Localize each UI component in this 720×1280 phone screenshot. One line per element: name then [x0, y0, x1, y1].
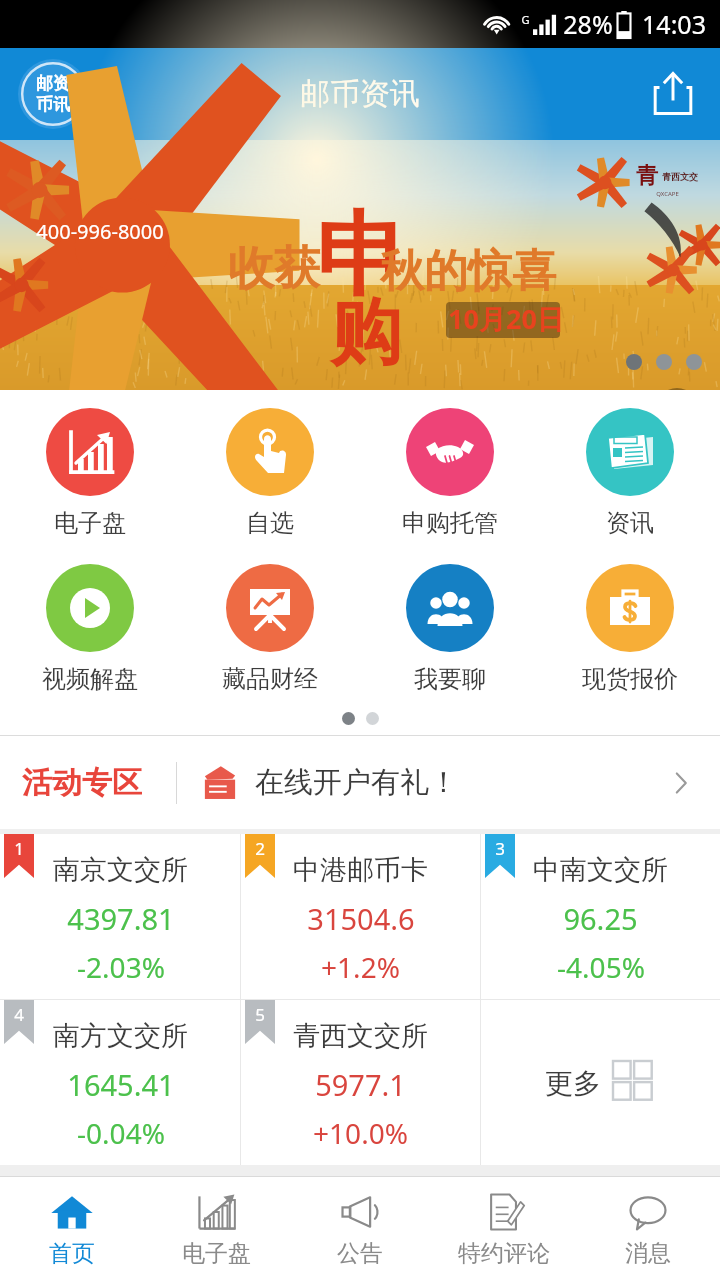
staticText: 活动专区	[22, 764, 142, 802]
button[interactable]: 更多	[481, 1000, 720, 1165]
staticText: 14:03	[642, 7, 706, 41]
staticText: 中南文交所	[533, 853, 668, 887]
staticText: 首页	[49, 1239, 95, 1268]
staticText: 2	[255, 837, 265, 860]
staticText: +10.0%	[313, 1114, 408, 1152]
button[interactable]: 电子盘	[144, 1177, 288, 1280]
staticText: -0.04%	[77, 1114, 165, 1152]
button[interactable]: 活动专区	[0, 736, 720, 829]
staticText: -4.05%	[557, 948, 645, 986]
staticText: 资	[53, 73, 70, 94]
button[interactable]: 藏品财经	[180, 558, 360, 700]
button[interactable]: 1	[0, 834, 240, 999]
staticText: 4	[14, 1003, 24, 1026]
staticText: 青西文交	[662, 171, 698, 182]
staticText: +1.2%	[321, 948, 400, 986]
staticText: 1645.41	[67, 1065, 175, 1104]
button[interactable]: 消息	[576, 1177, 720, 1280]
staticText: 3	[495, 837, 505, 860]
button[interactable]: 申购托管	[360, 402, 540, 544]
button[interactable]: 3	[481, 834, 720, 999]
staticText: 中港邮币卡	[293, 853, 428, 887]
staticText: 400-996-8000	[36, 218, 164, 245]
staticText: 公告	[337, 1239, 383, 1268]
staticText: 我要聊	[414, 664, 486, 694]
button[interactable]: 首页	[0, 1177, 144, 1280]
staticText: 青西文交所	[293, 1019, 428, 1053]
staticText: 南京文交所	[53, 853, 188, 887]
staticText: 1	[14, 837, 24, 860]
staticText: 更多	[545, 1066, 601, 1101]
staticText: 消息	[625, 1239, 671, 1268]
button[interactable]: 公告	[288, 1177, 432, 1280]
staticText: 购	[330, 288, 402, 379]
staticText: 10月20日	[448, 300, 564, 337]
button[interactable]: 特约评论	[432, 1177, 576, 1280]
staticText: 5977.1	[315, 1065, 406, 1104]
staticText: 在线开户有礼！	[255, 764, 458, 801]
staticText: -2.03%	[77, 948, 165, 986]
staticText: 电子盘	[182, 1239, 251, 1268]
button[interactable]: 自选	[180, 402, 360, 544]
button[interactable]: 资讯	[540, 402, 720, 544]
staticText: 5	[255, 1003, 265, 1026]
button[interactable]: 电子盘	[0, 402, 180, 544]
staticText: 96.25	[563, 899, 638, 938]
staticText: 收获	[228, 240, 320, 298]
button[interactable]: Promotion banner	[0, 140, 720, 390]
button[interactable]: 我要聊	[360, 558, 540, 700]
staticText: 电子盘	[54, 508, 126, 538]
staticText: 南方文交所	[53, 1019, 188, 1053]
staticText: 青	[636, 162, 658, 190]
button[interactable]: 4	[0, 1000, 240, 1165]
button[interactable]: 5	[241, 1000, 480, 1165]
staticText: QXCAPE	[656, 190, 679, 198]
staticText: 资讯	[606, 508, 654, 538]
staticText: 4397.81	[67, 899, 175, 938]
button[interactable]: 2	[241, 834, 480, 999]
staticText: 申购托管	[402, 508, 498, 538]
staticText: 秋的惊喜	[380, 244, 556, 299]
button[interactable]: Share	[646, 67, 700, 121]
staticText: 31504.6	[307, 899, 415, 938]
button[interactable]: 现货报价	[540, 558, 720, 700]
staticText: 藏品财经	[222, 664, 318, 694]
button[interactable]: Close banner	[655, 388, 699, 432]
staticText: 邮币资讯	[300, 75, 420, 113]
staticText: 邮	[36, 73, 53, 94]
button[interactable]: 视频解盘	[0, 558, 180, 700]
staticText: 特约评论	[458, 1239, 550, 1268]
staticText: 28%	[563, 7, 613, 41]
button[interactable]: App logo	[18, 59, 88, 129]
staticText: 现货报价	[582, 664, 678, 694]
staticText: 视频解盘	[42, 664, 138, 694]
staticText: G	[521, 12, 530, 27]
staticText: 币	[36, 94, 53, 115]
staticText: 讯	[53, 94, 70, 115]
staticText: 自选	[246, 508, 294, 538]
staticText: 申	[316, 198, 408, 314]
